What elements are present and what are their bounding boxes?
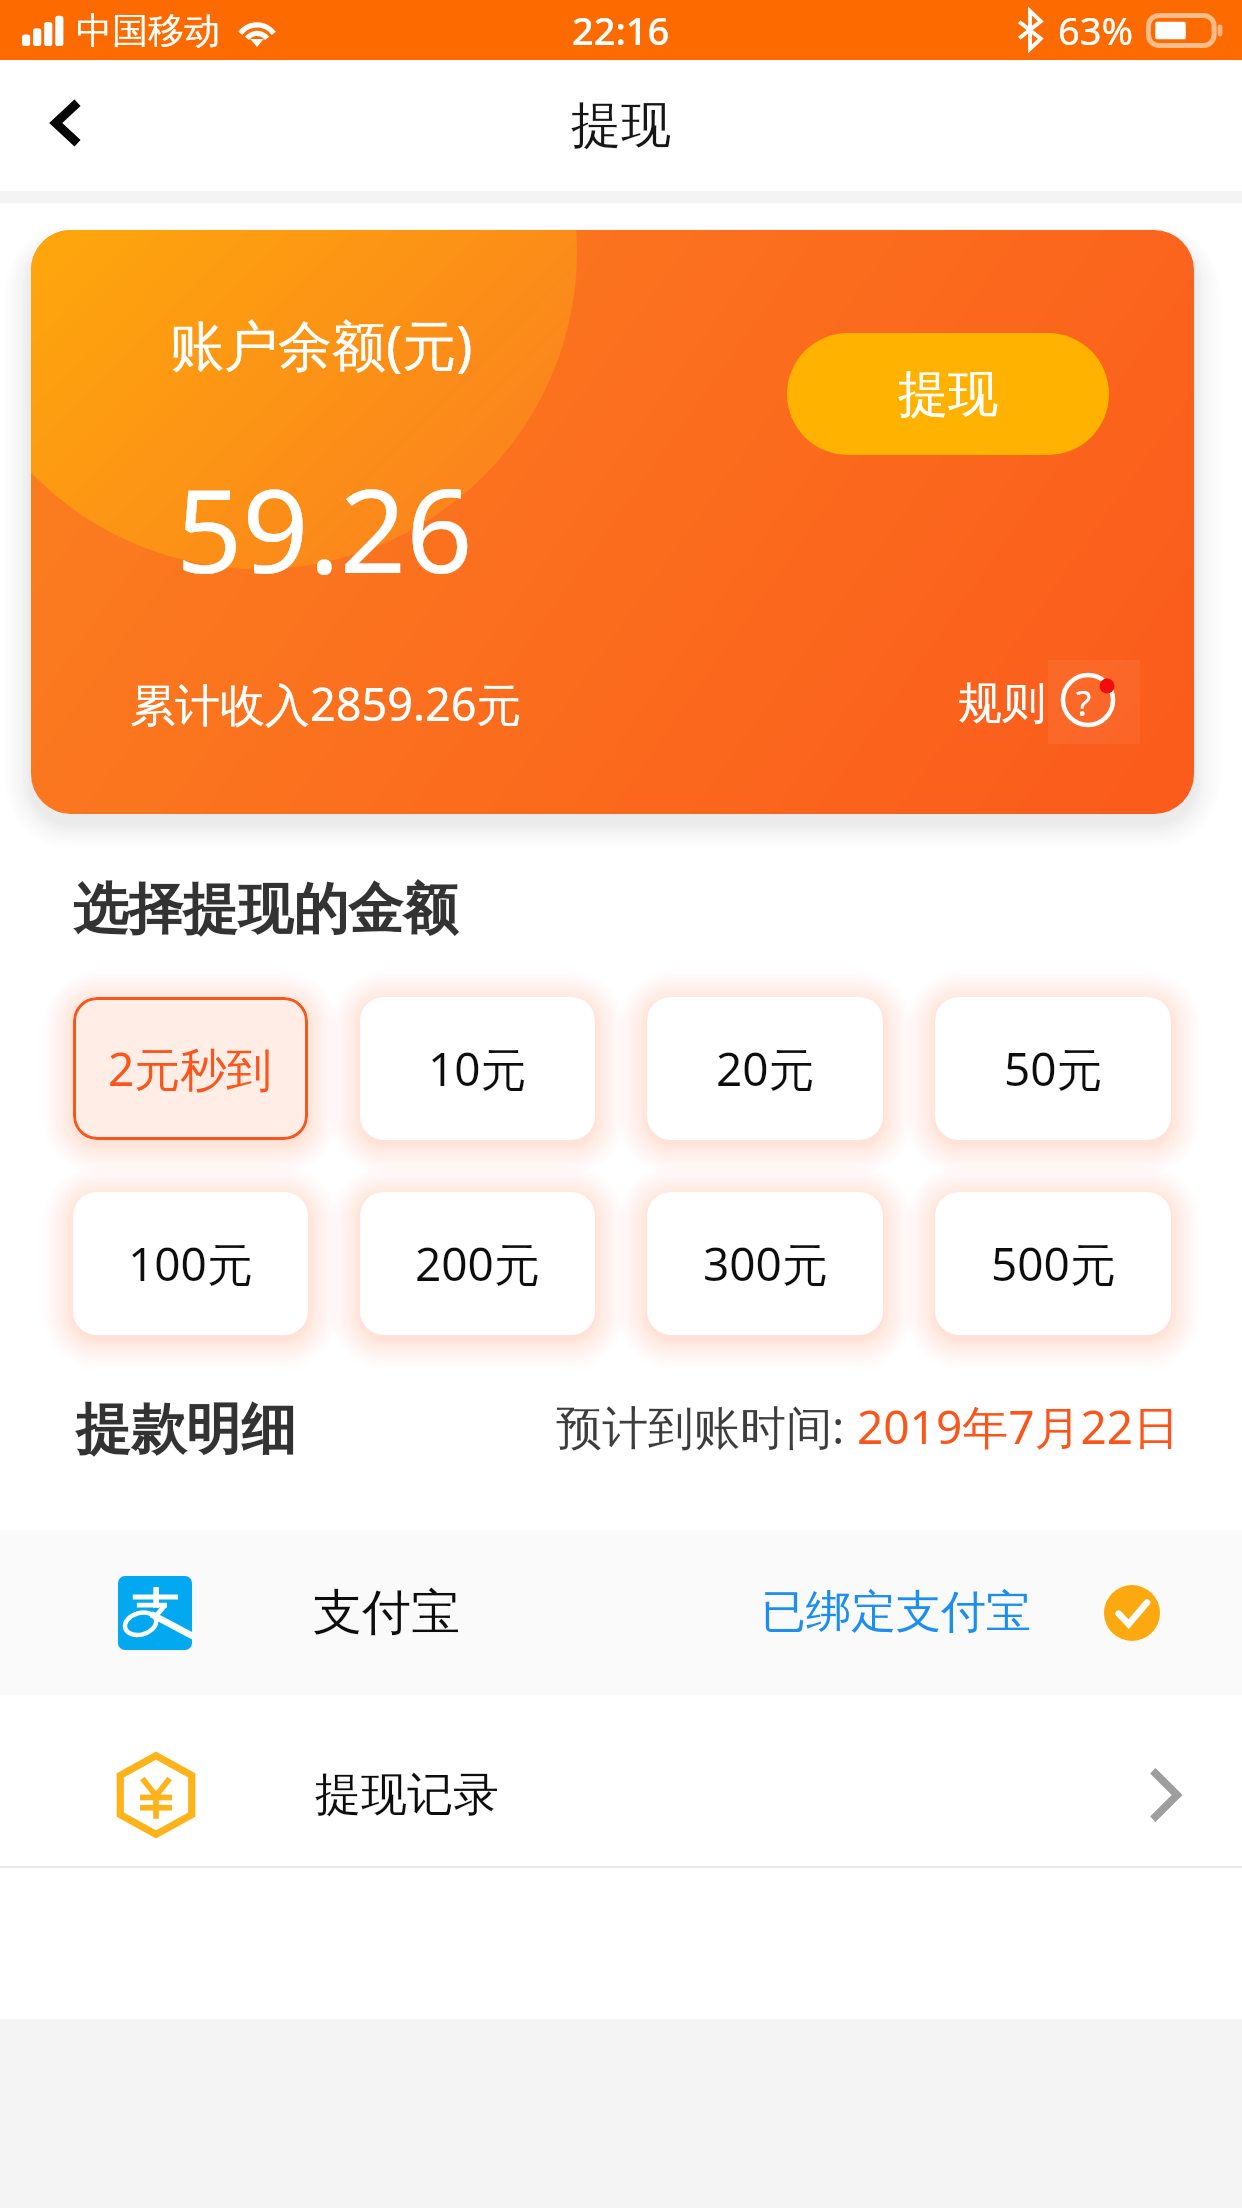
staticText: 100元 [128,1232,253,1295]
staticText: 59.26 [176,449,473,607]
button[interactable]: 200元 [360,1192,595,1335]
staticText: 已绑定支付宝 [761,1584,1031,1641]
staticText: 账户余额(元) [170,307,473,381]
staticText: 选择提现的金额 [73,875,458,944]
staticText: 300元 [703,1232,828,1295]
button[interactable]: 20元 [647,997,883,1140]
staticText: 提现记录 [315,1766,499,1824]
button[interactable]: 2元秒到 [73,997,308,1140]
staticText: 63% [1058,4,1134,56]
staticText: 提款明细 [76,1395,296,1464]
staticText: 500元 [991,1232,1116,1295]
staticText: 200元 [415,1232,540,1295]
button[interactable]: 50元 [935,997,1171,1140]
staticText: 2019年7月22日 [857,1395,1180,1458]
staticText: 规则 [958,676,1046,731]
button[interactable]: 提现记录 [0,1695,1242,1895]
button[interactable]: 300元 [647,1192,883,1335]
staticText: 50元 [1004,1037,1103,1100]
button[interactable]: 支付宝 [0,1530,1242,1695]
staticText: 10元 [428,1037,527,1100]
staticText: 20元 [716,1037,815,1100]
staticText: 预计到账时间: [556,1395,857,1458]
staticText: 支付宝 [313,1582,460,1644]
staticText: 2元秒到 [108,1037,273,1100]
button[interactable]: Back [0,60,130,190]
button[interactable]: 500元 [935,1192,1171,1335]
button[interactable]: 100元 [73,1192,308,1335]
staticText: 提现 [898,363,998,426]
staticText: 累计收入2859.26元 [130,673,522,734]
staticText: ? [1076,679,1092,727]
other: Withdrawal records [1149,1768,1181,1822]
button[interactable]: 提现 [787,333,1109,455]
button[interactable]: 规则 [925,654,1150,750]
staticText: 提现 [571,94,671,157]
staticText: 22:16 [572,4,670,56]
staticText: 中国移动 [76,8,220,53]
button[interactable]: 10元 [360,997,595,1140]
